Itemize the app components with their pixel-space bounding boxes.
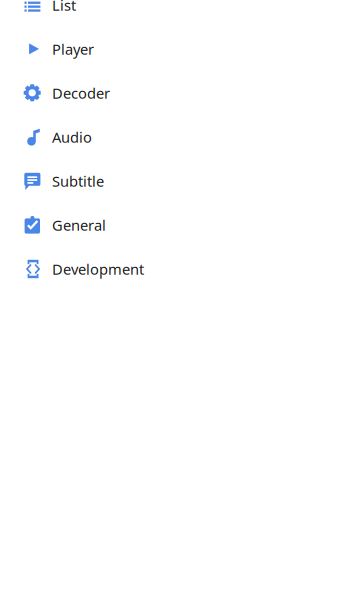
staticText: Subtitle xyxy=(52,171,104,191)
button[interactable]: Player xyxy=(0,27,360,71)
staticText: Development xyxy=(52,259,144,279)
button[interactable]: Subtitle xyxy=(0,159,360,203)
staticText: Decoder xyxy=(52,83,110,103)
staticText: Player xyxy=(52,39,94,59)
staticText: General xyxy=(52,215,106,235)
button[interactable]: General xyxy=(0,203,360,247)
staticText: List xyxy=(52,0,76,15)
button[interactable]: Decoder xyxy=(0,71,360,115)
button[interactable]: List xyxy=(0,0,360,27)
staticText: Audio xyxy=(52,127,92,147)
button[interactable]: Development xyxy=(0,247,360,291)
button[interactable]: Audio xyxy=(0,115,360,159)
